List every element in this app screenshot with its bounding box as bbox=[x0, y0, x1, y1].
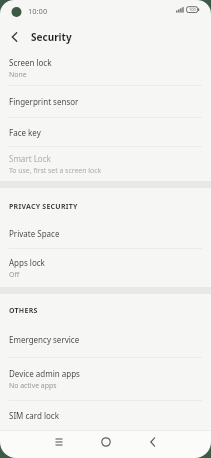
button[interactable]: Fingerprint sensor bbox=[0, 86, 211, 117]
button[interactable] bbox=[0, 24, 26, 50]
staticText: Emergency service bbox=[9, 334, 80, 345]
staticText: 100 bbox=[189, 7, 196, 12]
staticText: Off bbox=[9, 270, 20, 279]
staticText: OTHERS bbox=[9, 306, 38, 316]
button[interactable]: Device admin apps bbox=[0, 358, 211, 400]
button[interactable] bbox=[45, 428, 73, 456]
staticText: 10:00 bbox=[28, 6, 48, 16]
button[interactable]: Smart Lock bbox=[0, 147, 211, 181]
button[interactable]: Screen lock bbox=[0, 50, 211, 85]
button[interactable]: Face key bbox=[0, 118, 211, 146]
staticText: No active apps bbox=[9, 381, 57, 390]
staticText: Device admin apps bbox=[9, 368, 80, 379]
button[interactable]: Emergency service bbox=[0, 322, 211, 357]
staticText: SIM card lock bbox=[9, 410, 59, 421]
staticText: Security bbox=[31, 30, 72, 44]
button[interactable] bbox=[92, 428, 120, 456]
staticText: To use, first set a screen lock bbox=[9, 166, 102, 175]
staticText: PRIVACY SECURITY bbox=[9, 202, 78, 212]
button[interactable]: SIM card lock bbox=[0, 401, 211, 430]
staticText: Screen lock bbox=[9, 57, 52, 68]
staticText: Apps lock bbox=[9, 257, 45, 268]
staticText: None bbox=[9, 70, 27, 79]
staticText: Smart Lock bbox=[9, 153, 51, 164]
staticText: Face key bbox=[9, 127, 41, 138]
staticText: Fingerprint sensor bbox=[9, 96, 79, 107]
staticText: Private Space bbox=[9, 228, 60, 239]
button[interactable]: Private Space bbox=[0, 218, 211, 248]
button[interactable]: Apps lock bbox=[0, 249, 211, 287]
button[interactable] bbox=[139, 428, 167, 456]
